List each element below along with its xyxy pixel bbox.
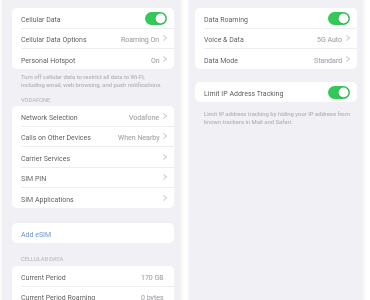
button[interactable]: Data Roaming <box>195 8 357 28</box>
button[interactable]: SIM PIN <box>12 167 174 187</box>
button[interactable]: Cellular Data <box>12 8 174 28</box>
staticText: VODAFONE <box>21 97 51 104</box>
staticText: Add eSIM <box>21 231 52 239</box>
button[interactable]: Current Period Roaming <box>12 286 174 300</box>
staticText: On <box>151 57 160 65</box>
staticText: CELLULAR DATA <box>21 256 64 263</box>
staticText: 0 bytes <box>141 294 164 300</box>
staticText: Standard <box>314 57 343 65</box>
button[interactable]: Personal Hotspot <box>12 49 174 69</box>
button[interactable]: SIM Applications <box>12 188 174 208</box>
button[interactable]: Add eSIM <box>12 223 174 243</box>
staticText: Vodafone <box>129 114 160 122</box>
button[interactable]: Limit IP Address Tracking, on <box>328 86 350 99</box>
button[interactable]: Network Selection <box>12 106 174 126</box>
button[interactable]: Cellular Data, on <box>145 12 167 25</box>
staticText: Limit IP Address Tracking <box>204 90 284 98</box>
staticText: Voice & Data <box>204 36 244 44</box>
button[interactable]: Voice & Data <box>195 28 357 48</box>
staticText: Roaming On <box>121 36 160 44</box>
staticText: Cellular Data Options <box>21 36 87 44</box>
button[interactable]: Limit IP Address Tracking <box>195 82 357 102</box>
staticText: Carrier Services <box>21 155 71 163</box>
staticText: When Nearby <box>118 134 160 142</box>
staticText: Data Roaming <box>204 16 248 24</box>
staticText: Current Period <box>21 274 66 282</box>
staticText: SIM Applications <box>21 196 74 204</box>
staticText: Turn off cellular data to restrict all d… <box>21 74 164 88</box>
button[interactable]: Cellular Data Options <box>12 28 174 48</box>
staticText: Data Mode <box>204 57 238 65</box>
staticText: Personal Hotspot <box>21 57 76 65</box>
staticText: Current Period Roaming <box>21 294 96 300</box>
staticText: Limit IP address tracking by hiding your… <box>204 111 355 125</box>
staticText: 170 GB <box>141 274 164 282</box>
button[interactable]: Carrier Services <box>12 147 174 167</box>
staticText: 5G Auto <box>317 36 343 44</box>
button[interactable]: Current Period <box>12 266 174 286</box>
button[interactable]: Data Roaming, on <box>328 12 350 25</box>
button[interactable]: Calls on Other Devices <box>12 126 174 146</box>
button[interactable]: Data Mode <box>195 49 357 69</box>
staticText: SIM PIN <box>21 175 47 183</box>
staticText: Network Selection <box>21 114 78 122</box>
staticText: Calls on Other Devices <box>21 134 91 142</box>
staticText: Cellular Data <box>21 16 61 24</box>
